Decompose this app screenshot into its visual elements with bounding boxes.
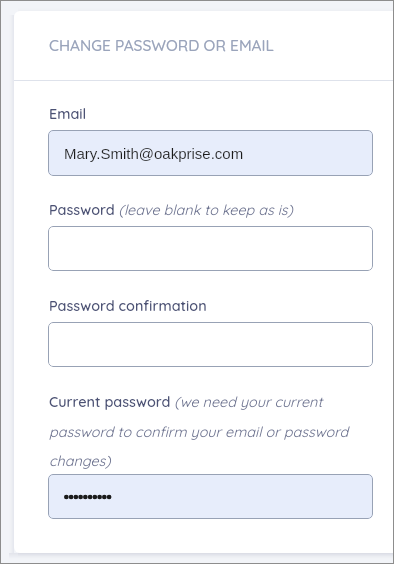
staticText: CHANGE PASSWORD OR EMAIL [49,36,274,55]
staticText: Mary.Smith@oakprise.com [64,145,244,162]
staticText: Password (leave blank to keep as is) [49,201,374,219]
button[interactable] [48,226,373,271]
button[interactable] [48,322,373,367]
staticText: Current password (we need your current p… [49,393,374,469]
button[interactable] [48,474,373,519]
button[interactable]: Mary.Smith@oakprise.com [48,130,373,176]
staticText: Password confirmation [49,297,374,315]
staticText: Email [49,105,374,123]
